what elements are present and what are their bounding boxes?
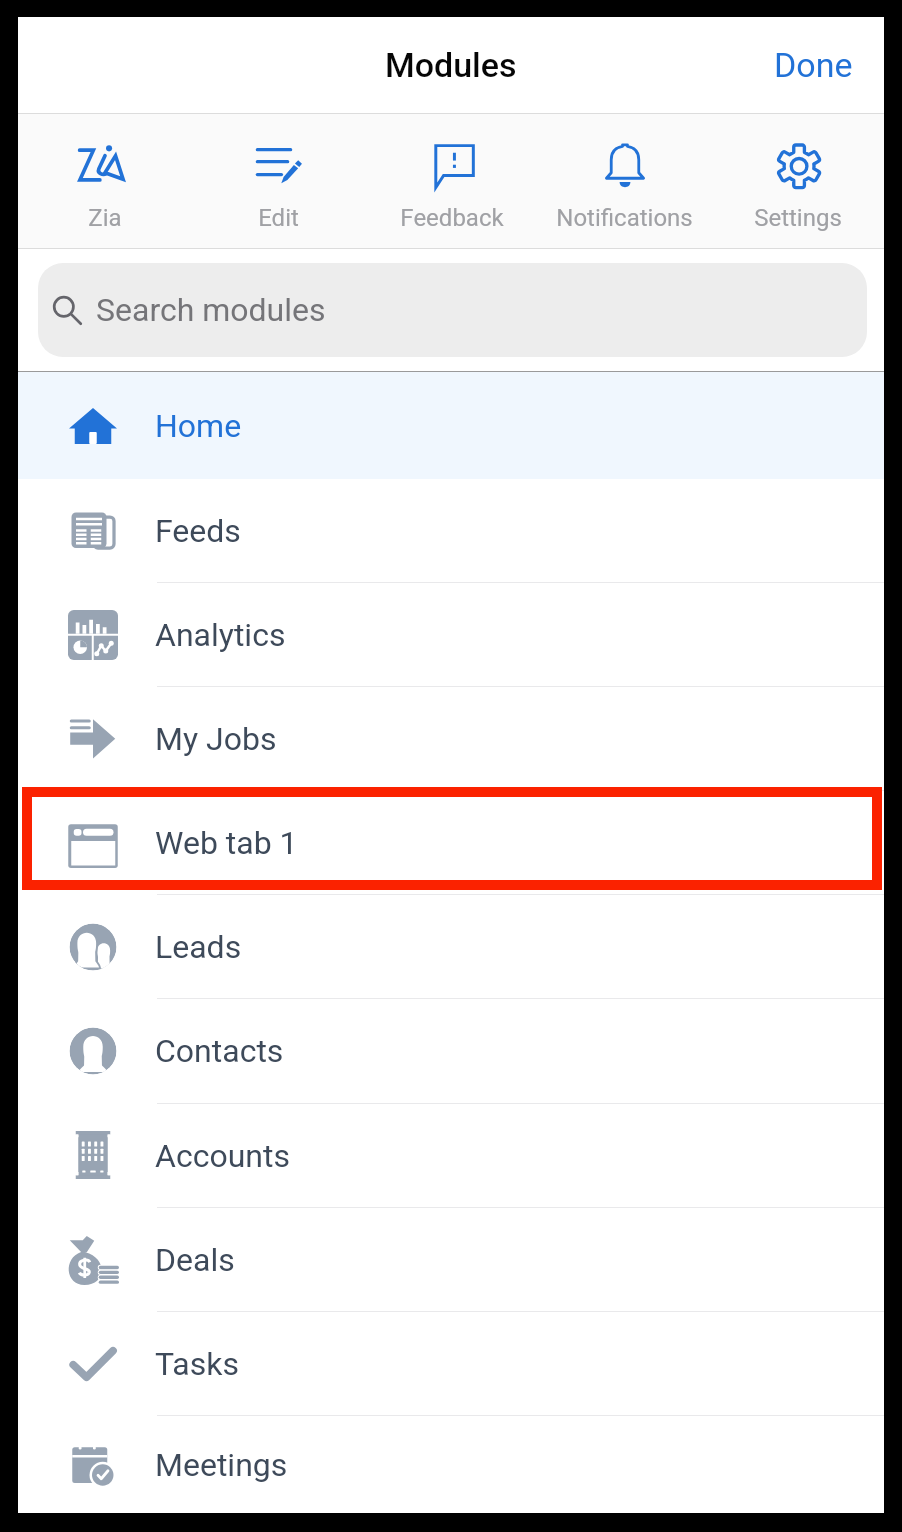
staticText: Notifications [556, 204, 693, 232]
button[interactable]: Web tab 1 [18, 791, 884, 894]
button[interactable]: Notifications [538, 114, 711, 248]
button[interactable]: Edit [192, 114, 365, 248]
staticText: Accounts [155, 1137, 290, 1175]
staticText: Feeds [155, 512, 241, 550]
staticText: Deals [155, 1241, 235, 1279]
staticText: Done [774, 45, 853, 85]
button[interactable]: Accounts [18, 1104, 884, 1207]
staticText: Edit [258, 204, 299, 232]
button[interactable]: Done [754, 31, 884, 99]
staticText: Contacts [155, 1032, 284, 1070]
button[interactable]: Analytics [18, 583, 884, 686]
button[interactable]: Contacts [18, 999, 884, 1103]
staticText: Feedback [400, 204, 504, 232]
button[interactable]: Leads [18, 895, 884, 998]
button[interactable]: My Jobs [18, 687, 884, 790]
staticText: Analytics [155, 616, 286, 654]
staticText: Leads [155, 928, 242, 966]
button[interactable]: Deals [18, 1208, 884, 1311]
button[interactable]: Feeds [18, 479, 884, 582]
staticText: Zia [88, 204, 122, 232]
staticText: Tasks [155, 1345, 239, 1383]
staticText: Meetings [155, 1446, 288, 1484]
staticText: Web tab 1 [155, 824, 298, 862]
staticText: My Jobs [155, 720, 277, 758]
staticText: Settings [754, 204, 842, 232]
button[interactable]: Search modules [38, 263, 867, 357]
button[interactable]: Meetings [18, 1416, 884, 1513]
button[interactable]: Settings [711, 114, 884, 248]
button[interactable]: Zia [18, 114, 192, 248]
staticText: Modules [385, 45, 517, 85]
button[interactable]: Tasks [18, 1312, 884, 1415]
staticText: Home [155, 407, 242, 445]
staticText: Search modules [96, 291, 326, 329]
button[interactable]: Home [18, 372, 884, 479]
button[interactable]: Feedback [365, 114, 538, 248]
